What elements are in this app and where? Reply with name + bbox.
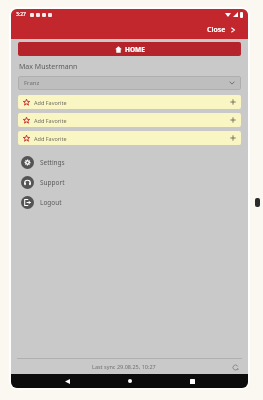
staticText: Franz — [24, 79, 40, 87]
staticText: Close — [207, 25, 226, 35]
staticText: HOME — [125, 45, 145, 54]
staticText: Support — [40, 178, 65, 187]
button[interactable]: Support — [11, 176, 248, 189]
staticText: Last sync 29.08.25, 10:27 — [92, 363, 156, 370]
button[interactable]: Logout — [11, 196, 248, 209]
button[interactable]: Recents — [185, 374, 199, 388]
staticText: Add Favorite — [34, 135, 67, 142]
button[interactable]: Home — [123, 374, 137, 388]
staticText: Settings — [40, 158, 65, 167]
staticText: Max Mustermann — [19, 62, 78, 72]
staticText: Add Favorite — [34, 117, 67, 124]
button[interactable]: Add Favorite — [18, 113, 241, 127]
button[interactable]: HOME — [18, 42, 241, 56]
staticText: Add Favorite — [34, 99, 67, 106]
button[interactable]: Back — [60, 374, 74, 388]
staticText: Logout — [40, 198, 62, 207]
button[interactable]: Settings — [11, 156, 248, 169]
button[interactable]: Add Favorite — [18, 95, 241, 109]
other: Power — [255, 198, 260, 207]
button[interactable]: Close — [203, 23, 240, 37]
button[interactable]: Add Favorite — [18, 131, 241, 145]
button[interactable]: Refresh — [230, 362, 240, 372]
button[interactable]: Franz — [18, 76, 241, 90]
staticText: 3:27 — [16, 11, 26, 18]
